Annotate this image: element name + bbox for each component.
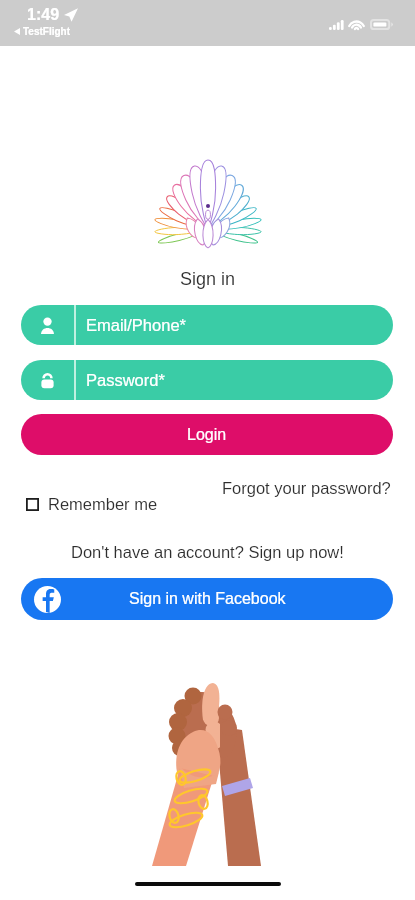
staticText: TestFlight — [23, 26, 71, 37]
staticText: Sign in with Facebook — [129, 590, 286, 608]
staticText: Login — [187, 426, 227, 444]
staticText: Forgot your password? — [222, 479, 391, 497]
button[interactable]: Don't have an account? Sign up now! — [71, 543, 344, 561]
staticText: Password* — [86, 371, 165, 389]
other: Facebook — [34, 586, 61, 613]
staticText: Email/Phone* — [86, 316, 186, 334]
staticText: Don't have an account? Sign up now! — [71, 543, 344, 561]
button[interactable]: Login — [21, 414, 393, 455]
staticText: Remember me — [48, 495, 158, 513]
button[interactable]: Sign in with Facebook — [21, 578, 393, 620]
button[interactable]: Email/Phone* — [21, 305, 393, 345]
button[interactable]: Password* — [21, 360, 393, 400]
staticText: Sign in — [180, 269, 236, 289]
staticText: 1:49 — [27, 6, 60, 24]
button[interactable]: Remember me — [21, 491, 158, 517]
button[interactable]: Forgot your password? — [222, 479, 391, 497]
